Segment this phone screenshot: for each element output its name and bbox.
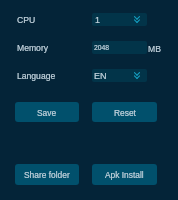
button[interactable]: Memory size in megabytes <box>92 41 147 54</box>
staticText: 1 <box>95 15 101 25</box>
button[interactable]: Share folder <box>15 164 79 185</box>
button[interactable]: Select EN <box>92 69 147 82</box>
button[interactable]: Select 1 <box>92 13 147 26</box>
button[interactable]: Apk Install <box>92 164 157 185</box>
staticText: Language <box>17 71 56 81</box>
button[interactable]: Reset <box>92 102 157 122</box>
staticText: Share folder <box>24 170 70 179</box>
staticText: Reset <box>114 108 136 117</box>
staticText: Apk Install <box>105 170 144 179</box>
staticText: Save <box>37 108 57 117</box>
staticText: MB <box>148 44 161 54</box>
staticText: EN <box>94 71 107 81</box>
button[interactable]: Save <box>15 102 79 122</box>
staticText: 2048 <box>94 44 110 52</box>
staticText: Memory <box>17 43 49 53</box>
staticText: CPU <box>17 15 36 25</box>
